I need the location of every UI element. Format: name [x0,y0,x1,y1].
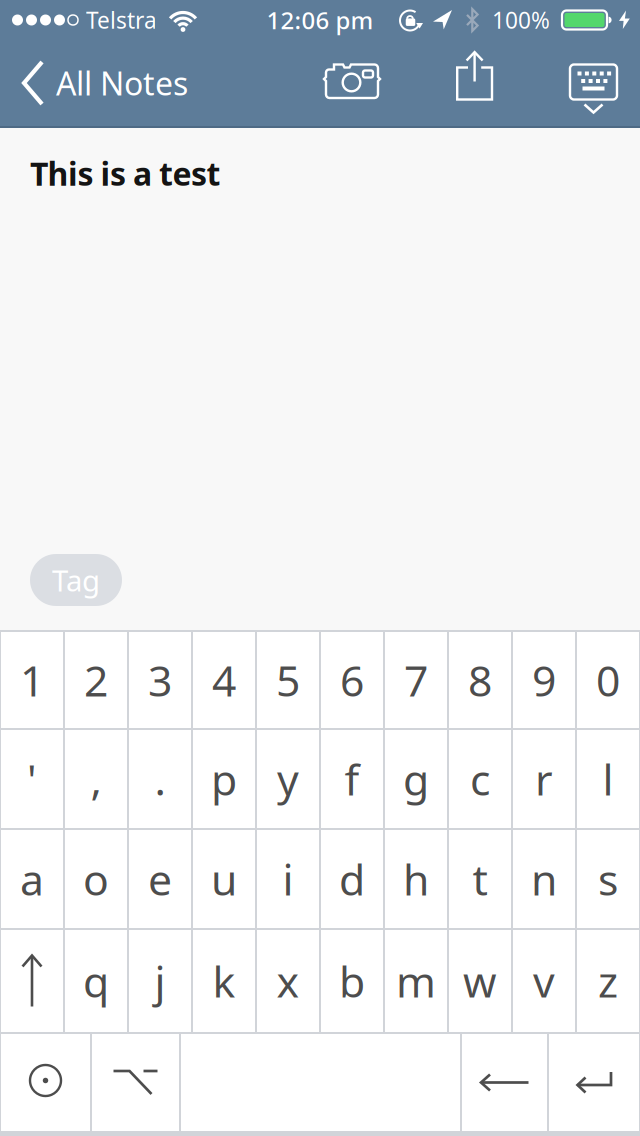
button[interactable]: 9 [513,632,575,728]
button[interactable]: t [449,830,511,928]
button[interactable]: y [257,730,319,828]
button[interactable]: g [385,730,447,828]
staticText: . [154,751,165,807]
button[interactable]: e [129,830,191,928]
staticText: 5 [276,652,300,708]
button[interactable]: 7 [385,632,447,728]
staticText: 4 [212,652,236,708]
staticText: d [339,851,365,907]
button[interactable]: 1 [1,632,63,728]
button[interactable]: Dismiss Keyboard [570,58,617,107]
staticText: ' [27,751,37,807]
button[interactable]: l [577,730,639,828]
button[interactable]: p [193,730,255,828]
button[interactable]: Return [549,1034,639,1131]
button[interactable]: d [321,830,383,928]
button[interactable]: o [65,830,127,928]
button[interactable]: 3 [129,632,191,728]
staticText: 7 [404,652,428,708]
button[interactable]: c [449,730,511,828]
button[interactable]: h [385,830,447,928]
staticText: p [211,751,237,807]
staticText: q [83,953,109,1009]
button[interactable]: k [193,930,255,1032]
staticText: y [277,751,299,807]
staticText: 12:06 pm [266,4,373,36]
staticText: v [533,953,555,1009]
button[interactable]: w [449,930,511,1032]
staticText: k [212,953,235,1009]
staticText: 6 [340,652,364,708]
staticText: x [276,953,299,1009]
button[interactable]: All Notes [0,60,188,106]
staticText: c [470,751,490,807]
button[interactable]: . [129,730,191,828]
button[interactable]: 0 [577,632,639,728]
button[interactable]: Next Keyboard [1,1034,90,1131]
button[interactable]: b [321,930,383,1032]
button[interactable]: Delete [462,1034,547,1131]
staticText: g [403,751,429,807]
staticText: a [20,851,44,907]
button[interactable]: a [1,830,63,928]
staticText: h [403,851,429,907]
button[interactable]: n [513,830,575,928]
button[interactable]: Camera [325,63,381,103]
staticText: r [535,751,553,807]
button[interactable]: x [257,930,319,1032]
staticText: i [282,851,293,907]
button[interactable]: s [577,830,639,928]
staticText: 1 [20,652,44,708]
button[interactable]: v [513,930,575,1032]
button[interactable]: u [193,830,255,928]
staticText: z [598,953,618,1009]
staticText: Tag [52,560,100,599]
button[interactable]: m [385,930,447,1032]
staticText: This is a test [30,152,220,194]
button[interactable]: z [577,930,639,1032]
button[interactable]: Option [92,1034,179,1131]
button[interactable]: 5 [257,632,319,728]
staticText: m [396,953,436,1009]
staticText: 3 [148,652,172,708]
button[interactable]: 2 [65,632,127,728]
staticText: Telstra [86,5,157,35]
button[interactable]: 8 [449,632,511,728]
staticText: w [463,953,497,1009]
staticText: 100% [492,5,550,35]
button[interactable]: 4 [193,632,255,728]
button[interactable]: ' [1,730,63,828]
button[interactable]: Shift [1,930,63,1032]
button[interactable]: i [257,830,319,928]
staticText: e [148,851,172,907]
button[interactable]: j [129,930,191,1032]
staticText: o [83,851,109,907]
staticText: 9 [532,652,556,708]
staticText: 8 [468,652,492,708]
button[interactable]: Share [456,58,494,108]
button[interactable]: r [513,730,575,828]
staticText: u [211,851,237,907]
staticText: l [602,751,613,807]
staticText: , [90,751,101,807]
button[interactable]: 6 [321,632,383,728]
staticText: s [598,851,618,907]
staticText: 2 [84,652,108,708]
button[interactable]: f [321,730,383,828]
staticText: t [472,851,487,907]
staticText: 0 [596,652,620,708]
button[interactable]: , [65,730,127,828]
button[interactable]: Tag [30,554,122,606]
staticText: f [344,751,359,807]
staticText: j [154,953,165,1009]
staticText: b [339,953,365,1009]
staticText: All Notes [56,62,188,104]
button[interactable]: q [65,930,127,1032]
staticText: n [531,851,557,907]
